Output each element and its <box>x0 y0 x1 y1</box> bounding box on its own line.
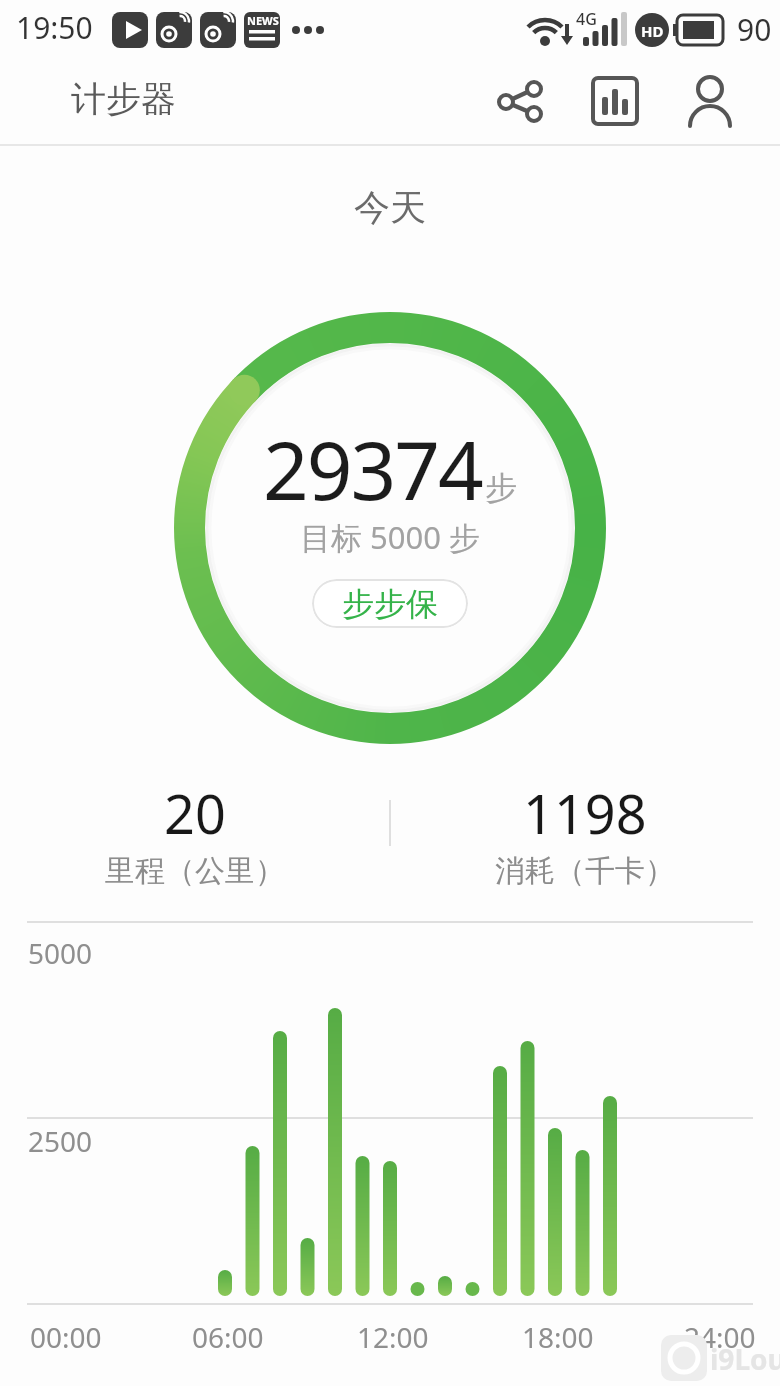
staticText: 里程（公里） <box>105 852 285 890</box>
staticText: 2500 <box>28 1122 93 1160</box>
staticText: 18:00 <box>522 1318 594 1356</box>
staticText: 29374 <box>263 414 482 523</box>
staticText: NEWS <box>247 13 279 28</box>
button[interactable]: 步步保 <box>312 579 468 628</box>
staticText: 步步保 <box>342 584 438 624</box>
button[interactable] <box>589 75 641 127</box>
staticText: 今天 <box>0 185 780 230</box>
staticText: 06:00 <box>192 1318 264 1356</box>
staticText: 4G <box>576 8 597 30</box>
staticText: 目标 5000 步 <box>0 516 780 558</box>
staticText: 12:00 <box>357 1318 429 1356</box>
staticText: 00:00 <box>30 1318 102 1356</box>
staticText: i9Lou <box>710 1340 780 1378</box>
staticText: 24:00 <box>684 1318 756 1356</box>
staticText: 19:50 <box>16 7 93 48</box>
staticText: 计步器 <box>71 77 176 121</box>
staticText: HD <box>641 21 664 41</box>
button[interactable] <box>494 75 546 127</box>
staticText: 20 <box>164 776 226 850</box>
staticText: 5000 <box>28 934 93 972</box>
staticText: 90 <box>737 9 772 50</box>
button[interactable] <box>684 75 736 127</box>
staticText: 步 <box>485 468 517 508</box>
staticText: 1198 <box>523 776 647 850</box>
staticText: 消耗（千卡） <box>495 852 675 890</box>
